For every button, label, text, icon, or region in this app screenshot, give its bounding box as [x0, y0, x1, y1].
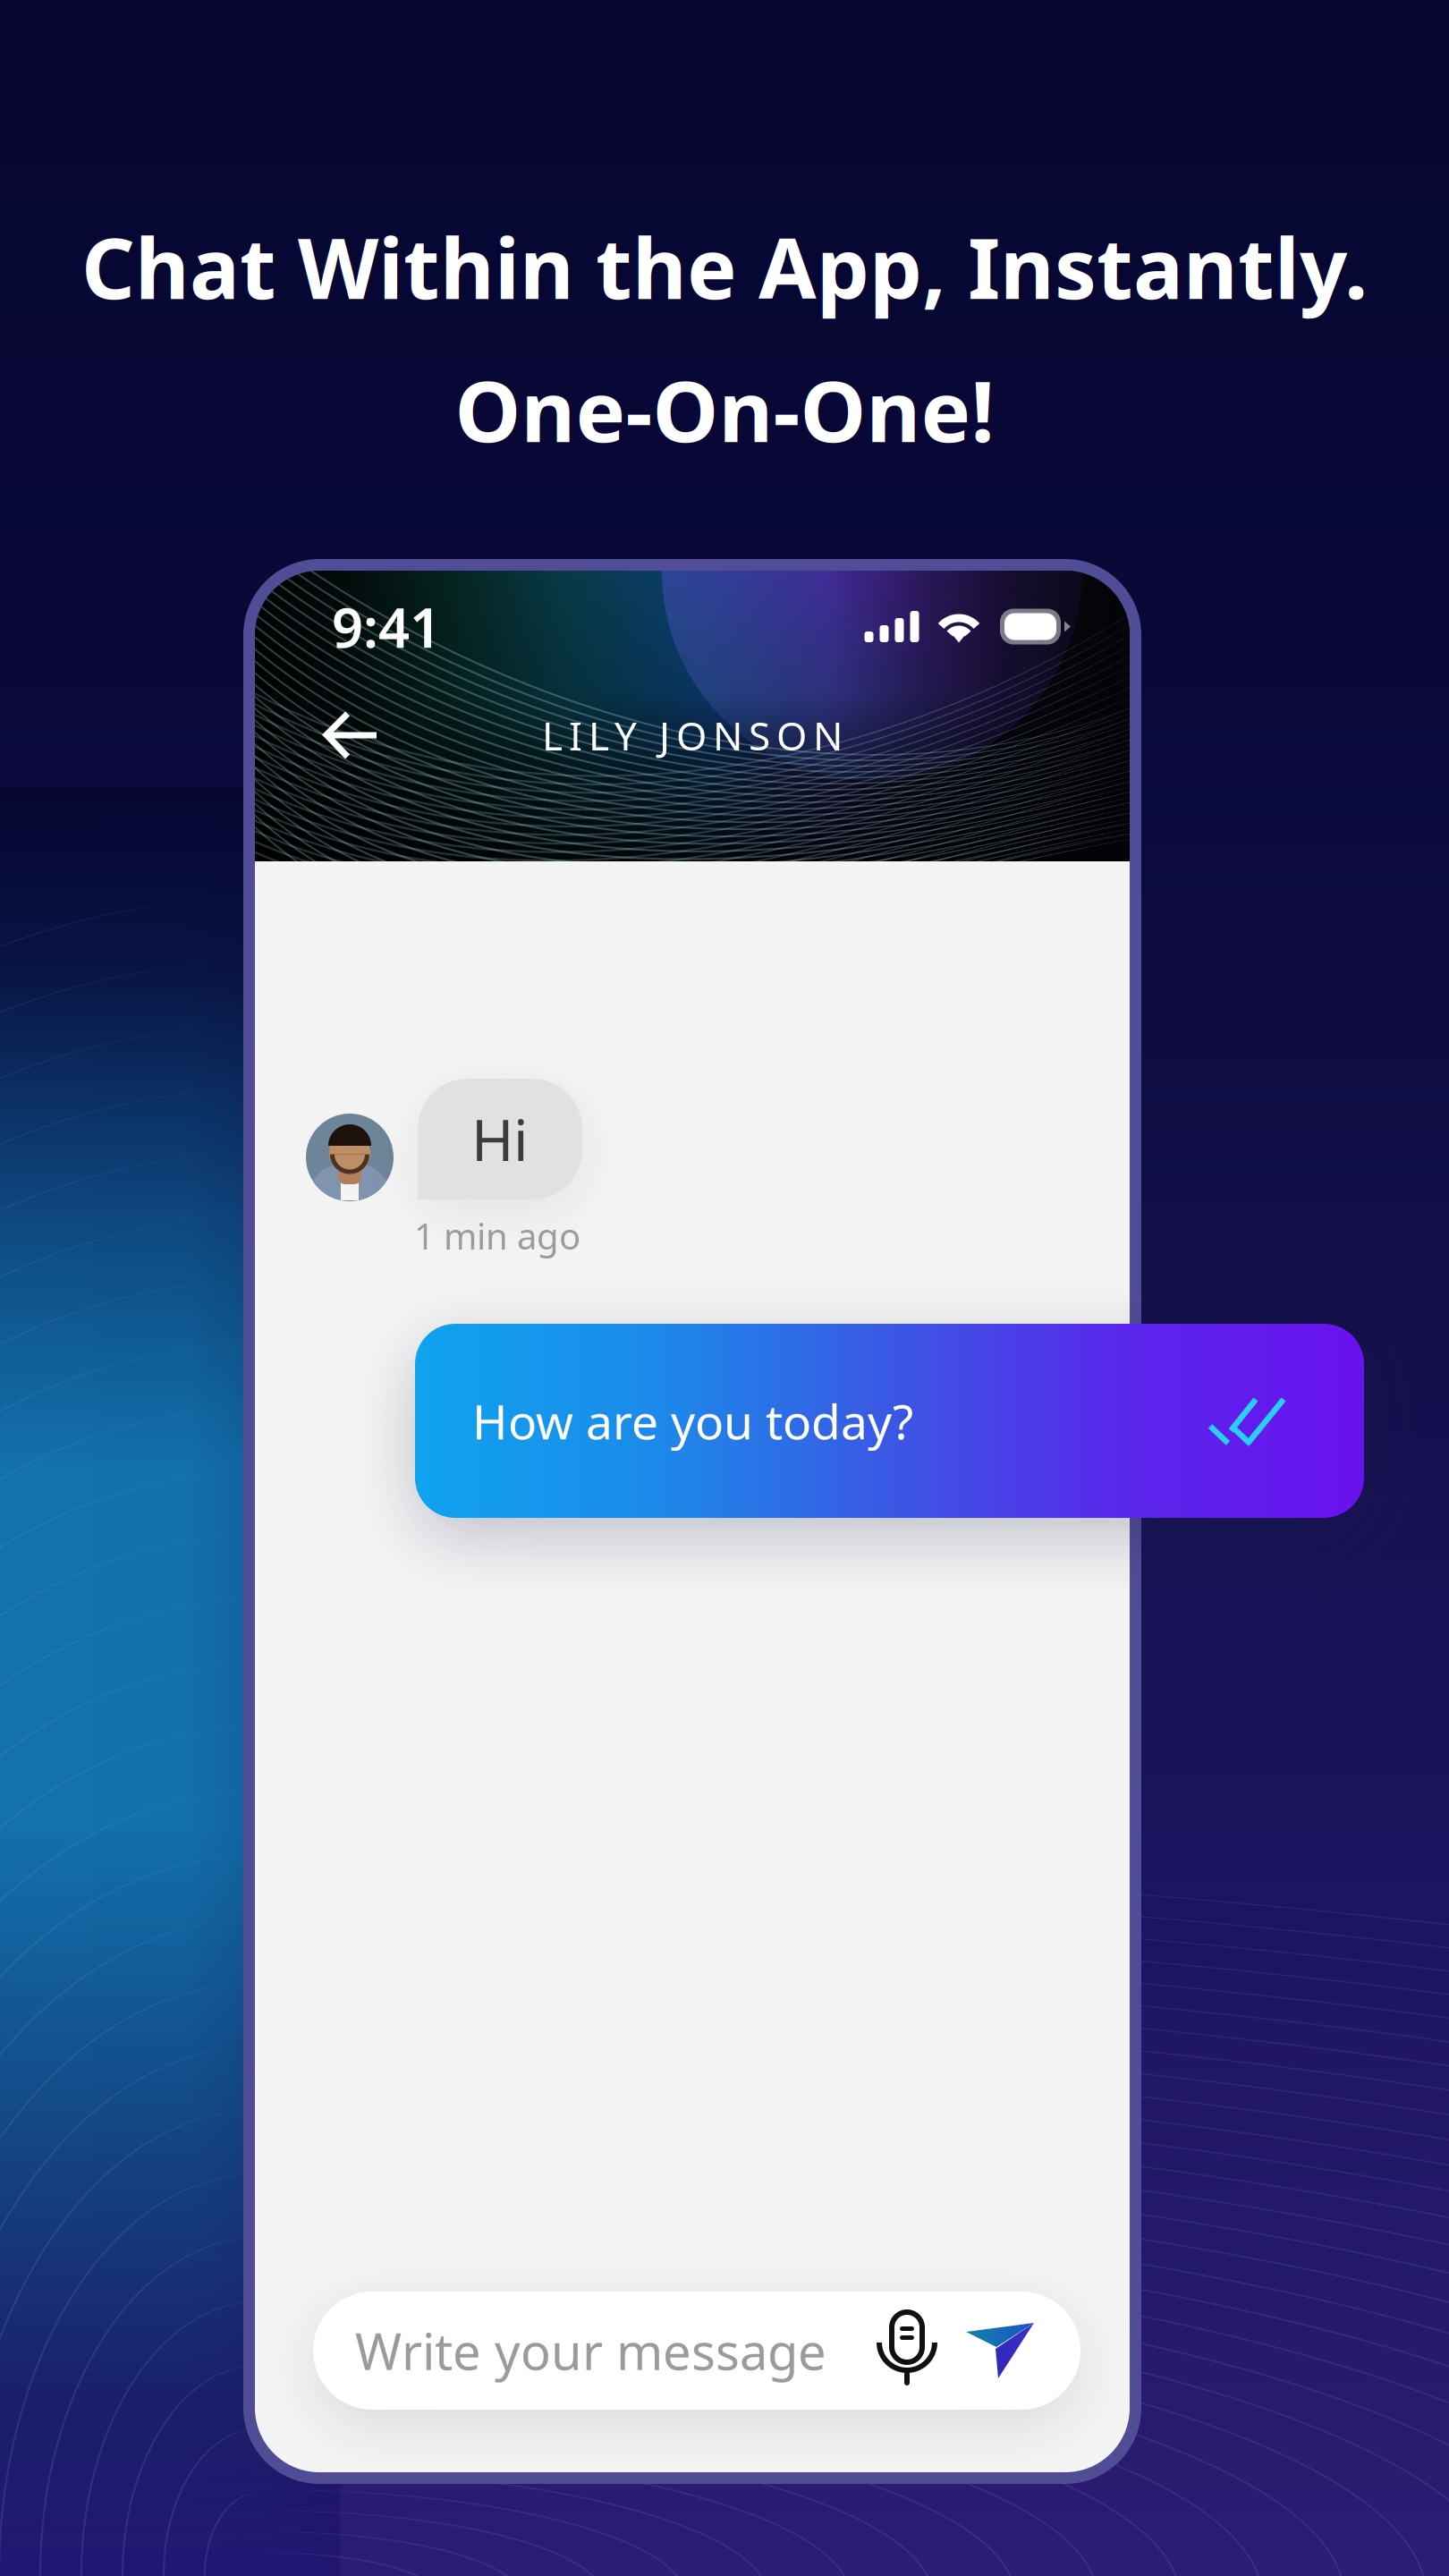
staticText: LILY JONSON [542, 709, 843, 761]
staticText: One-On-One! [455, 354, 994, 465]
staticText: 1 min ago [414, 1212, 580, 1259]
button[interactable]: Write your message [313, 2292, 1080, 2410]
staticText: Hi [471, 1101, 529, 1177]
staticText: How are you today? [472, 1389, 913, 1452]
staticText: 9:41 [332, 590, 441, 663]
button[interactable]: Back [255, 682, 439, 788]
staticText: Write your message [355, 2317, 826, 2384]
staticText: Chat Within the App, Instantly. [81, 211, 1368, 322]
